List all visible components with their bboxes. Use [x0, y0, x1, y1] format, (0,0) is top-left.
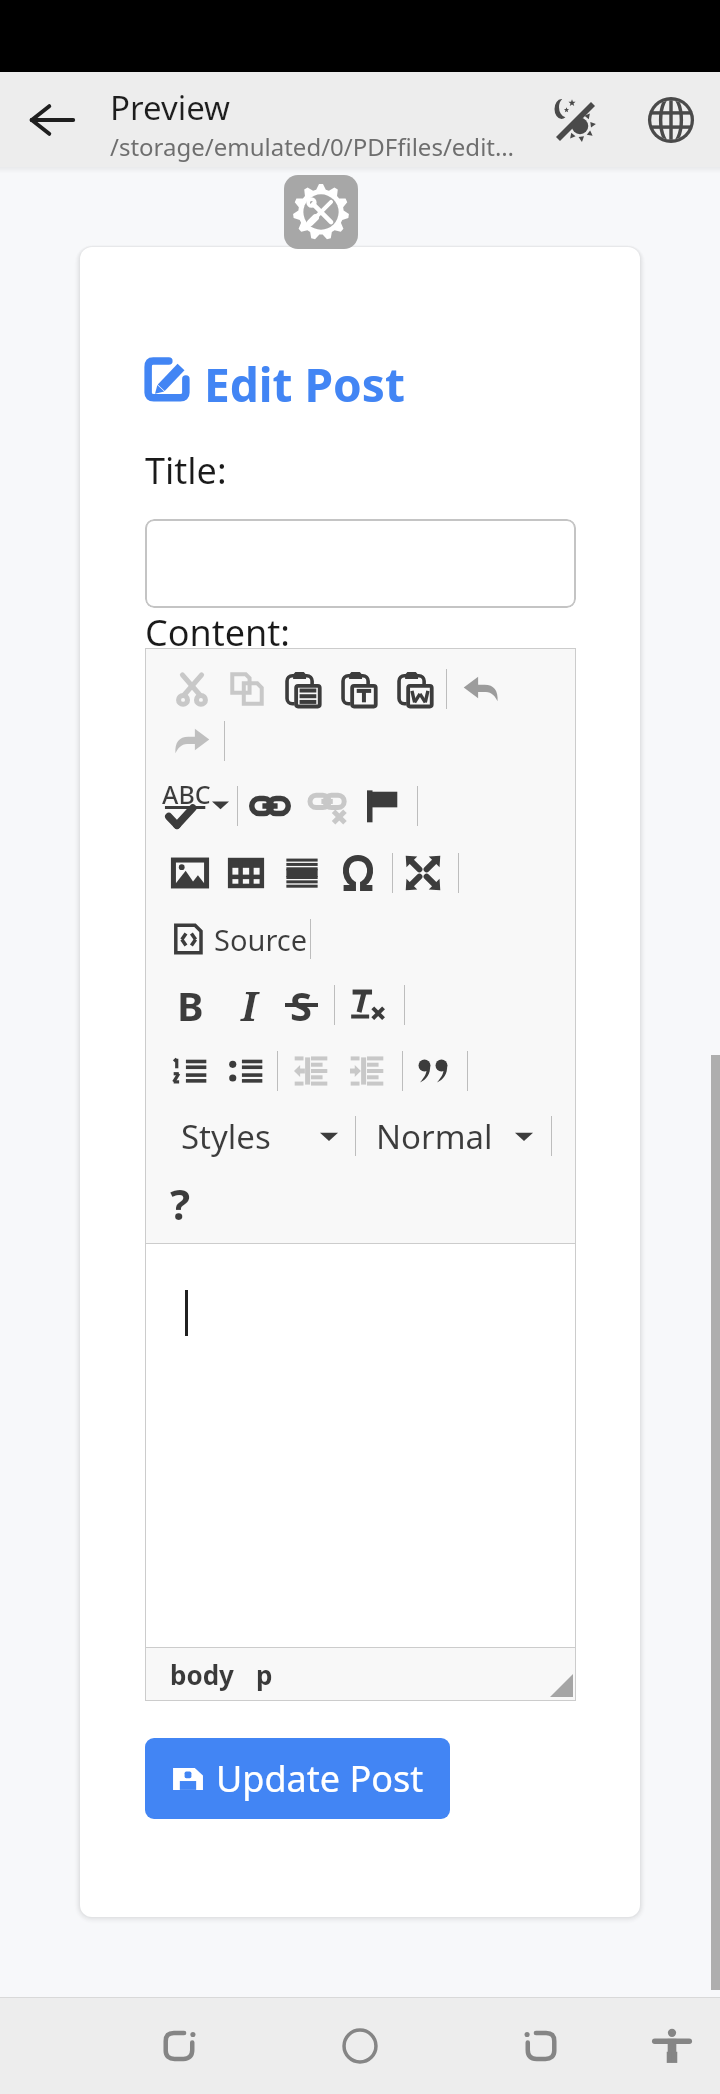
button[interactable]: Special character	[330, 845, 386, 901]
staticText: body	[170, 1657, 234, 1692]
button[interactable]: Spell check options	[208, 792, 232, 816]
button[interactable]: Undo	[453, 661, 509, 717]
staticText: /storage/emulated/0/PDFfiles/edit…	[110, 130, 514, 163]
staticText: Title:	[145, 446, 227, 495]
button[interactable]: Home	[312, 1998, 408, 2094]
button[interactable]: Bulleted list	[218, 1043, 274, 1099]
button[interactable]: Back	[8, 76, 96, 164]
button[interactable]: Edit Post	[144, 353, 405, 405]
staticText: Source	[214, 920, 308, 959]
button[interactable]: Cut	[164, 661, 220, 717]
button[interactable]: Anchor	[354, 778, 410, 834]
button[interactable]: Redo	[164, 713, 220, 769]
button[interactable]: Paste as plain text	[331, 661, 387, 717]
button[interactable]: Back	[132, 1998, 228, 2094]
staticText: B	[177, 978, 204, 1032]
staticText: Update Post	[216, 1754, 424, 1803]
button[interactable]: ?	[152, 1175, 208, 1231]
button[interactable]: Copy	[219, 661, 275, 717]
staticText: I	[241, 978, 258, 1032]
button[interactable]: Image	[162, 845, 218, 901]
staticText: ABC	[162, 777, 211, 811]
staticText: Edit Post	[204, 353, 405, 405]
staticText: Preview	[110, 85, 231, 130]
staticText: p	[256, 1657, 273, 1692]
staticText: S	[290, 978, 313, 1032]
button[interactable]: I	[221, 977, 277, 1033]
button[interactable]: Numbered list	[162, 1043, 218, 1099]
button[interactable]: Spell check	[162, 778, 214, 834]
button[interactable]: Unlink	[301, 778, 357, 834]
staticText: Styles	[181, 1114, 271, 1159]
button[interactable]: Recent apps	[492, 1998, 588, 2094]
button[interactable]: Settings	[284, 175, 358, 249]
button[interactable]: S	[273, 977, 329, 1033]
button[interactable]: Horizontal rule	[274, 845, 330, 901]
button[interactable]: Open in browser	[627, 76, 715, 164]
button[interactable]: Paste	[275, 661, 331, 717]
button[interactable]: Decrease indent	[283, 1043, 339, 1099]
button[interactable]: Block quote	[406, 1043, 462, 1099]
staticText: Normal	[376, 1114, 493, 1159]
button[interactable]: Normal	[376, 1108, 533, 1164]
button[interactable]: Link	[242, 778, 298, 834]
staticText: Content:	[145, 608, 290, 657]
button[interactable]: Paste from Word	[387, 661, 443, 717]
button[interactable]: Accessibility	[624, 1998, 720, 2094]
staticText: ?	[170, 1175, 191, 1231]
button[interactable]: Table	[218, 845, 274, 901]
button[interactable]	[145, 519, 576, 608]
button[interactable]: B	[162, 977, 218, 1033]
button[interactable]: Update Post	[145, 1738, 450, 1819]
button[interactable]: Toggle dark mode	[531, 76, 619, 164]
button[interactable]: Maximize	[395, 845, 451, 901]
button[interactable]: Source	[174, 911, 308, 967]
button[interactable]: Increase indent	[339, 1043, 395, 1099]
button[interactable]: Styles	[181, 1108, 338, 1164]
button[interactable]: Remove format	[339, 977, 395, 1033]
